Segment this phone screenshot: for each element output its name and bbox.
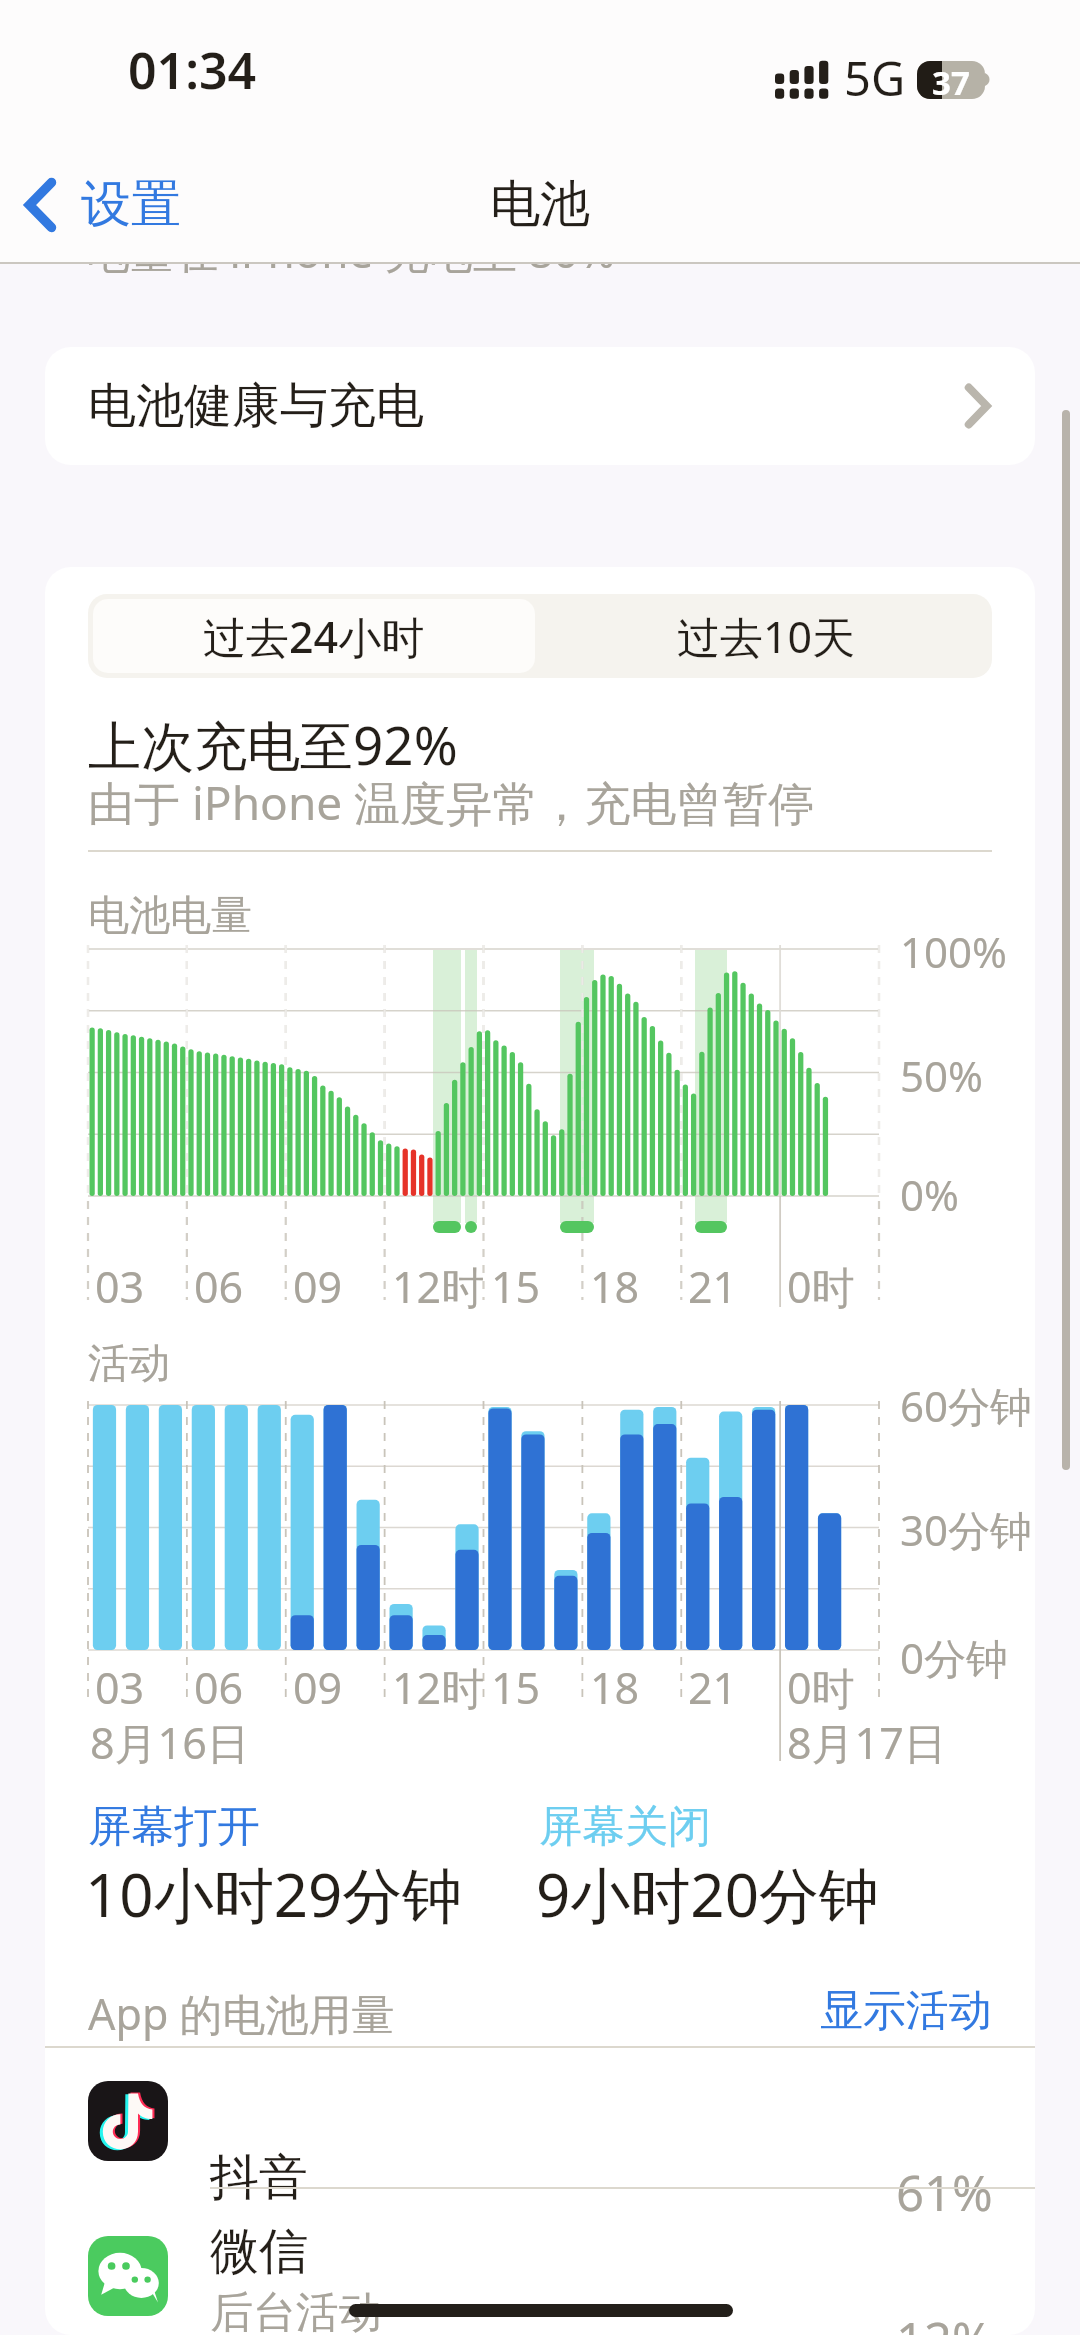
- staticText: 30分钟: [900, 1501, 1033, 1558]
- staticText: 61%: [896, 2159, 993, 2226]
- staticText: 09: [293, 1257, 343, 1316]
- staticText: 8月16日: [90, 1713, 250, 1772]
- staticText: 0时: [787, 1257, 855, 1316]
- staticText: 100%: [900, 923, 1007, 980]
- staticText: 60分钟: [900, 1377, 1033, 1434]
- staticText: 过去24小时: [203, 607, 425, 666]
- staticText: 18: [590, 1658, 640, 1717]
- staticText: 50%: [900, 1047, 983, 1104]
- staticText: 后台活动: [210, 2286, 382, 2335]
- staticText: 微信: [210, 2221, 308, 2283]
- staticText: 活动: [88, 1338, 170, 1390]
- staticText: 过去10天: [677, 607, 856, 666]
- staticText: 01:34: [128, 36, 257, 104]
- button[interactable]: 显示活动: [820, 567, 992, 621]
- staticText: 12时: [392, 1658, 485, 1717]
- staticText: 0时: [787, 1658, 855, 1717]
- staticText: 5G: [844, 46, 906, 110]
- staticText: 06: [194, 1658, 244, 1717]
- button[interactable]: 设置: [25, 173, 181, 236]
- staticText: 设置: [81, 173, 181, 236]
- staticText: 0%: [900, 1166, 959, 1223]
- staticText: 10小时29分钟: [85, 1853, 463, 1935]
- staticText: 电池健康与充电: [88, 376, 424, 436]
- button[interactable]: 过去24小时: [93, 599, 535, 673]
- staticText: 抖音: [210, 2147, 308, 2209]
- staticText: 09: [293, 1658, 343, 1717]
- button[interactable]: 微信: [45, 2187, 1035, 2335]
- staticText: 18: [590, 1257, 640, 1316]
- staticText: 屏幕打开: [88, 1800, 260, 1854]
- staticText: 由于 iPhone 温度异常，充电曾暂停: [88, 771, 815, 834]
- staticText: 电量在 iPhone 充电至 80%: [86, 221, 616, 281]
- staticText: 上次充电至92%: [88, 708, 458, 780]
- staticText: 12%: [896, 2306, 993, 2335]
- staticText: 03: [95, 1257, 145, 1316]
- button[interactable]: 电池健康与充电: [45, 347, 1035, 465]
- staticText: 电池电量: [88, 890, 252, 942]
- staticText: 12时: [392, 1257, 485, 1316]
- staticText: 15: [491, 1257, 541, 1316]
- staticText: 屏幕关闭: [539, 1800, 711, 1854]
- staticText: 8月17日: [787, 1713, 947, 1772]
- staticText: 15: [491, 1658, 541, 1717]
- staticText: 21: [688, 1257, 738, 1316]
- staticText: 37: [932, 61, 970, 98]
- staticText: 0分钟: [900, 1629, 1009, 1686]
- button[interactable]: 抖音: [45, 2046, 1035, 2187]
- staticText: 9小时20分钟: [536, 1853, 879, 1935]
- staticText: 电池: [490, 173, 590, 236]
- staticText: 03: [95, 1658, 145, 1717]
- staticText: App 的电池用量: [88, 1984, 395, 2043]
- staticText: 06: [194, 1257, 244, 1316]
- button[interactable]: 过去10天: [540, 594, 992, 678]
- staticText: 21: [688, 1658, 738, 1717]
